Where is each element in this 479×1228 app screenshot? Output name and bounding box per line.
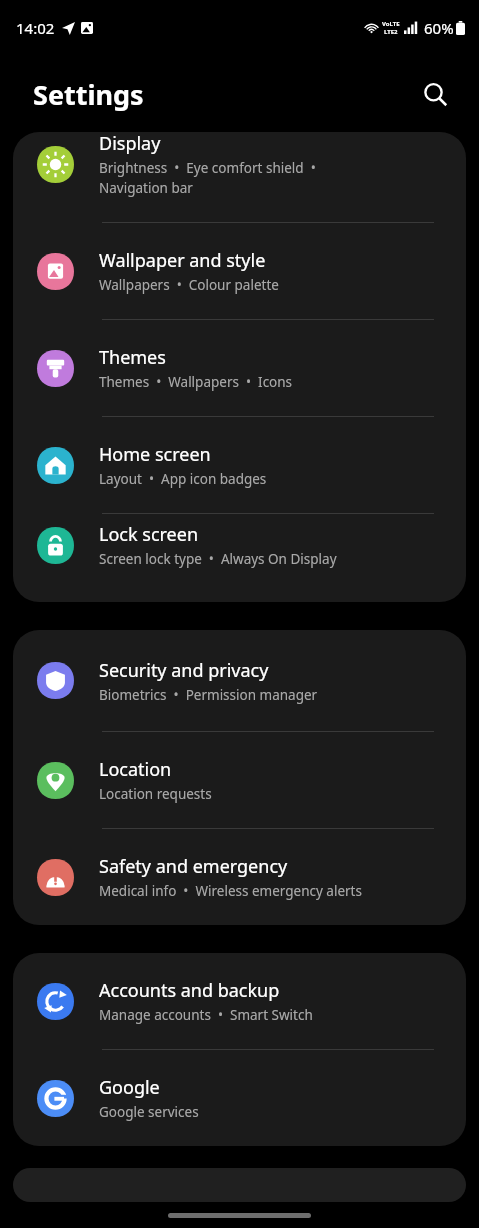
staticText: 14:02 bbox=[16, 18, 55, 38]
staticText: LTE2 bbox=[384, 28, 398, 36]
staticText: Location requests bbox=[99, 785, 212, 803]
staticText: Lock screen bbox=[99, 522, 199, 547]
staticText: Google services bbox=[99, 1103, 199, 1121]
button[interactable]: Location bbox=[13, 732, 466, 828]
button[interactable]: Home screen bbox=[13, 417, 466, 513]
button[interactable]: Lock screen bbox=[13, 514, 466, 576]
button[interactable]: Display bbox=[13, 132, 466, 222]
button[interactable]: Google bbox=[13, 1050, 466, 1146]
button[interactable]: Search bbox=[413, 72, 457, 116]
staticText: Manage accounts • Smart Switch bbox=[99, 1006, 313, 1024]
staticText: Wallpaper and style bbox=[99, 248, 266, 273]
staticText: Biometrics • Permission manager bbox=[99, 686, 318, 704]
staticText: Settings bbox=[33, 76, 144, 113]
button[interactable]: Wallpaper and style bbox=[13, 223, 466, 319]
staticText: Location bbox=[99, 757, 172, 782]
button[interactable]: Safety and emergency bbox=[13, 829, 466, 925]
staticText: Google bbox=[99, 1075, 160, 1100]
staticText: Safety and emergency bbox=[99, 854, 288, 879]
staticText: Brightness • Eye comfort shield • Naviga… bbox=[99, 159, 316, 197]
button[interactable]: Themes bbox=[13, 320, 466, 416]
button[interactable]: Accounts and backup bbox=[13, 953, 466, 1049]
staticText: Display bbox=[99, 132, 161, 156]
staticText: Wallpapers • Colour palette bbox=[99, 276, 279, 294]
staticText: Accounts and backup bbox=[99, 978, 280, 1003]
staticText: 60% bbox=[424, 18, 454, 38]
staticText: Home screen bbox=[99, 442, 211, 467]
staticText: Layout • App icon badges bbox=[99, 470, 267, 488]
staticText: Medical info • Wireless emergency alerts bbox=[99, 882, 362, 900]
staticText: Screen lock type • Always On Display bbox=[99, 550, 337, 568]
staticText: VoLTE bbox=[382, 20, 400, 28]
staticText: Themes • Wallpapers • Icons bbox=[99, 373, 293, 391]
staticText: Security and privacy bbox=[99, 658, 269, 683]
button[interactable]: Security and privacy bbox=[13, 630, 466, 731]
staticText: Themes bbox=[99, 345, 166, 370]
